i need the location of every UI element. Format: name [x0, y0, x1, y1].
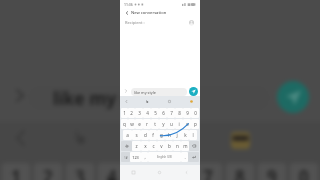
button[interactable]: l [189, 130, 197, 140]
button[interactable]: Enter [188, 152, 199, 162]
button[interactable]: o [183, 119, 191, 129]
staticText: s [135, 132, 138, 138]
button[interactable]: n [173, 141, 181, 151]
button[interactable]: z [132, 141, 141, 151]
staticText: 0 [194, 110, 197, 116]
button[interactable]: Emoji [188, 98, 195, 105]
button[interactable]: 1 [121, 108, 128, 118]
button[interactable]: Clipboard [166, 98, 173, 105]
staticText: v [160, 143, 163, 149]
button[interactable]: g [157, 130, 165, 140]
staticText: 2 [43, 165, 53, 180]
button[interactable]: k [181, 130, 189, 140]
staticText: d [144, 132, 147, 138]
button[interactable]: 7 [167, 108, 175, 118]
button[interactable]: r [143, 119, 151, 129]
button[interactable]: s [132, 130, 141, 140]
staticText: r [146, 121, 148, 127]
staticText: h [168, 132, 171, 138]
button[interactable]: w [128, 119, 135, 129]
button[interactable]: t [151, 119, 159, 129]
button[interactable]: Recipient : [125, 17, 194, 27]
staticText: 4 [107, 165, 117, 180]
button[interactable]: Suggestion b [144, 98, 151, 105]
staticText: g [160, 132, 163, 138]
staticText: !# [124, 155, 128, 159]
button[interactable]: i [175, 119, 183, 129]
staticText: i [178, 121, 180, 127]
button[interactable]: 5 [151, 108, 159, 118]
button[interactable]: v [157, 141, 165, 151]
button[interactable]: 4 [143, 108, 151, 118]
staticText: New conversation [131, 10, 167, 16]
button[interactable]: 3 [135, 108, 143, 118]
button[interactable]: English (US) [148, 152, 181, 162]
staticText: f [152, 132, 154, 138]
staticText: , [144, 154, 146, 160]
button[interactable]: Send [189, 87, 198, 96]
button[interactable]: b [165, 141, 173, 151]
button[interactable]: d [141, 130, 149, 140]
staticText: a [126, 132, 129, 138]
staticText: b [168, 143, 171, 149]
staticText: 3 [75, 165, 85, 180]
button[interactable]: 123 [130, 152, 141, 162]
staticText: 7 [203, 165, 213, 180]
staticText: p [194, 121, 197, 127]
staticText: x [144, 143, 147, 149]
button[interactable]: !# [121, 152, 130, 162]
button[interactable]: x [141, 141, 149, 151]
button[interactable]: 0 [191, 108, 199, 118]
staticText: 3 [138, 110, 141, 116]
button[interactable]: More keyboard options [123, 98, 130, 105]
staticText: 8 [235, 165, 245, 180]
button[interactable]: e [135, 119, 143, 129]
button[interactable]: Back [123, 9, 130, 16]
button[interactable]: Recents [120, 165, 146, 180]
button[interactable]: 8 [175, 108, 183, 118]
button[interactable]: 2 [128, 108, 135, 118]
staticText: q [123, 121, 126, 127]
staticText: w [130, 121, 134, 127]
staticText: 11:36 [124, 2, 133, 7]
staticText: 0 [299, 165, 309, 180]
staticText: 7 [170, 110, 173, 116]
staticText: Recipient : [125, 20, 145, 25]
staticText: 2 [130, 110, 133, 116]
button[interactable]: c [149, 141, 157, 151]
button[interactable]: Show more [121, 86, 131, 96]
staticText: 9 [186, 110, 189, 116]
button[interactable]: . [181, 152, 188, 162]
button[interactable]: f [149, 130, 157, 140]
staticText: 4 [146, 110, 149, 116]
button[interactable]: like my style [131, 88, 187, 96]
button[interactable]: h [165, 130, 173, 140]
staticText: l [192, 132, 194, 138]
button[interactable]: a [123, 130, 132, 140]
staticText: like my style [134, 90, 156, 95]
button[interactable]: Backspace [189, 141, 199, 151]
button[interactable]: , [141, 152, 148, 162]
button[interactable]: q [121, 119, 128, 129]
staticText: n [176, 143, 179, 149]
staticText: c [152, 143, 155, 149]
button[interactable]: u [167, 119, 175, 129]
button[interactable]: 9 [183, 108, 191, 118]
button[interactable]: p [191, 119, 199, 129]
button[interactable]: j [173, 130, 181, 140]
staticText: z [135, 143, 138, 149]
button[interactable]: 6 [159, 108, 167, 118]
staticText: t [154, 121, 156, 127]
button[interactable]: m [181, 141, 189, 151]
button[interactable]: Shift [121, 141, 132, 151]
staticText: o [186, 121, 189, 127]
staticText: y [162, 121, 165, 127]
staticText: 8 [178, 110, 181, 116]
staticText: like my style [53, 86, 163, 110]
staticText: 123 [132, 155, 139, 160]
button[interactable]: y [159, 119, 167, 129]
